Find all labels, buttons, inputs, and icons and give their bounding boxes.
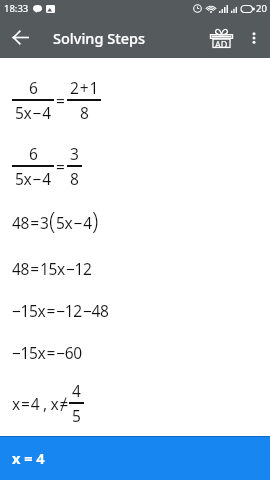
- staticText: 3: [70, 143, 79, 164]
- button[interactable]: Back: [0, 17, 41, 58]
- staticText: =: [56, 156, 65, 177]
- staticText: 2 + 1: [70, 77, 98, 98]
- staticText: 5x − 4: [15, 102, 51, 123]
- staticText: 5x − 4: [15, 168, 51, 189]
- staticText: 5: [72, 405, 81, 426]
- staticText: AD: [215, 38, 228, 50]
- staticText: 6: [29, 77, 38, 98]
- staticText: 48 = 15x −12: [12, 258, 92, 279]
- staticText: (: [49, 204, 56, 235]
- staticText: 20: [256, 2, 267, 15]
- staticText: ): [92, 204, 99, 235]
- staticText: 8: [70, 168, 79, 189]
- button[interactable]: x = 4: [0, 436, 270, 480]
- staticText: −15x = −12 −48: [12, 300, 109, 321]
- staticText: 6: [29, 143, 38, 164]
- staticText: Solving Steps: [53, 28, 146, 48]
- staticText: 18:33: [4, 2, 29, 15]
- button[interactable]: Watch ad for rewards: [202, 20, 237, 55]
- staticText: 5x − 4: [56, 212, 92, 233]
- staticText: 48 = 3: [12, 212, 49, 233]
- staticText: 4: [72, 380, 81, 401]
- staticText: 8: [80, 102, 89, 123]
- staticText: x = 4 , x ≠: [12, 393, 69, 414]
- staticText: x = 4: [12, 448, 45, 468]
- staticText: −15x = −60: [12, 342, 82, 363]
- staticText: =: [56, 90, 65, 111]
- button[interactable]: More options: [237, 21, 270, 54]
